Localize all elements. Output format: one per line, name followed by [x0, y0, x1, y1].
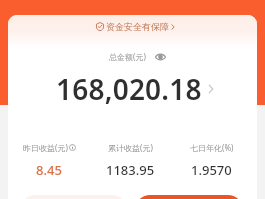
button[interactable]: Hide amount	[155, 53, 166, 61]
staticText: 8.45	[36, 161, 62, 179]
staticText: 168,020.18	[56, 70, 202, 108]
button[interactable]: 转入	[135, 195, 243, 199]
button[interactable]: 七日年化(%)	[171, 142, 252, 179]
staticText: 昨日收益(元)	[23, 142, 68, 153]
staticText: 七日年化(%)	[190, 142, 234, 153]
button[interactable]: 累计收益(元)	[90, 142, 171, 179]
button[interactable]: 昨日收益(元)	[8, 142, 90, 179]
button[interactable]: 168,020.18	[56, 70, 214, 108]
staticText: 资金安全有保障	[106, 21, 169, 32]
staticText: 1183.95	[106, 161, 155, 179]
staticText: 总金额(元)	[109, 51, 146, 62]
button[interactable]: 转出	[20, 195, 127, 199]
button[interactable]: 总金额(元)	[109, 51, 166, 62]
staticText: 累计收益(元)	[108, 142, 153, 153]
staticText: 1.9570	[191, 161, 232, 179]
button[interactable]: 资金安全有保障	[96, 21, 175, 32]
